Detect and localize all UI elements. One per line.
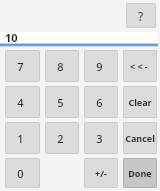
button[interactable]: 6 [84, 86, 118, 118]
staticText: 10 [5, 30, 18, 42]
button[interactable]: 1 [5, 122, 40, 154]
staticText: 9 [96, 59, 103, 74]
staticText: +/- [95, 167, 107, 179]
button[interactable]: Done [123, 158, 157, 188]
button[interactable]: 8 [45, 50, 79, 82]
staticText: 5 [57, 95, 64, 110]
button[interactable]: 10 [0, 32, 158, 44]
staticText: 4 [17, 95, 24, 110]
staticText: 8 [57, 59, 64, 74]
button[interactable]: 3 [84, 122, 118, 154]
button[interactable]: Cancel [123, 122, 157, 154]
staticText: Done [128, 167, 152, 179]
button[interactable]: 7 [5, 50, 40, 82]
button[interactable]: 4 [5, 86, 40, 118]
staticText: Cancel [125, 132, 155, 144]
staticText: 6 [96, 95, 103, 110]
staticText: <<- [130, 60, 150, 72]
button[interactable]: 5 [45, 86, 79, 118]
staticText: Clear [128, 96, 152, 108]
staticText: 2 [57, 131, 64, 146]
button[interactable]: 9 [84, 50, 118, 82]
staticText: 7 [17, 59, 24, 74]
button[interactable]: Backspace [123, 50, 157, 82]
button[interactable]: Help [126, 3, 156, 28]
button[interactable]: 2 [45, 122, 79, 154]
staticText: ? [138, 8, 144, 24]
button[interactable]: 0 [5, 158, 40, 188]
button[interactable]: Clear [123, 86, 157, 118]
button[interactable]: Toggle sign [84, 158, 118, 188]
staticText: 0 [17, 166, 24, 181]
staticText: 1 [17, 131, 24, 146]
staticText: 3 [96, 131, 103, 146]
